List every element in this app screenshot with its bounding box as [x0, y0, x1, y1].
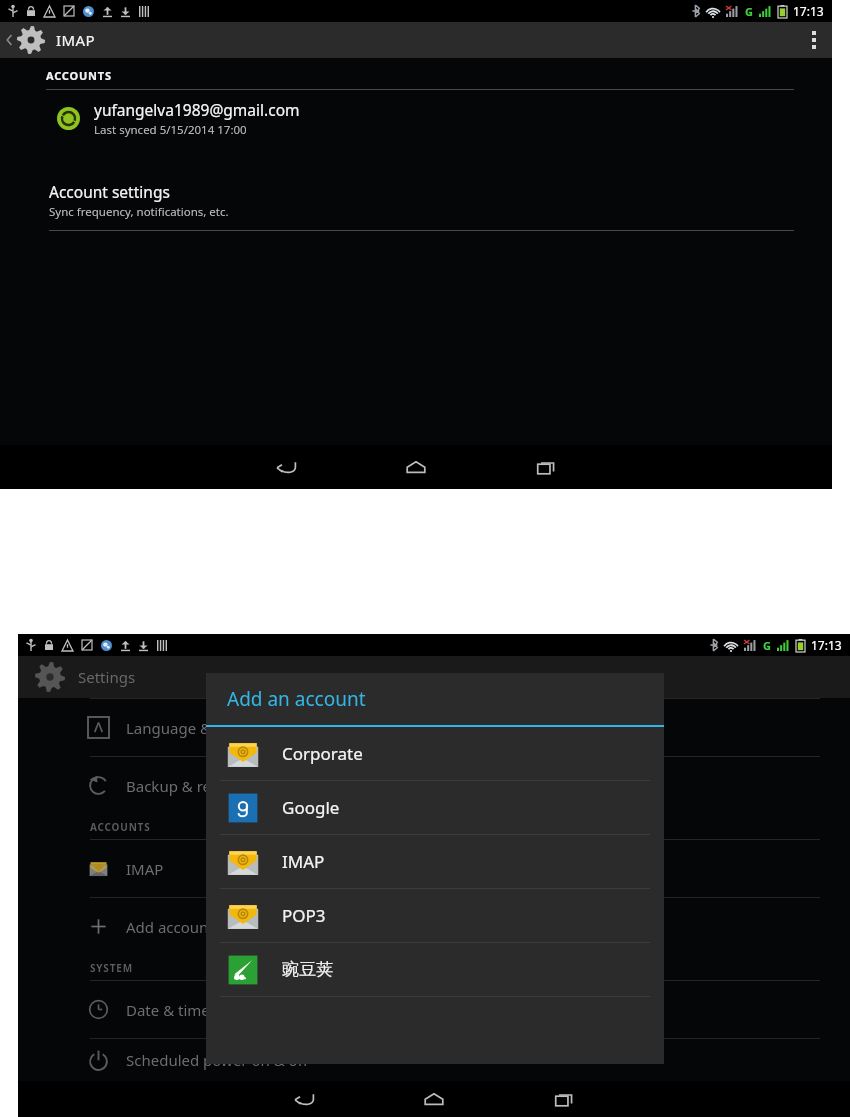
button[interactable]: IMAP	[18, 840, 850, 897]
staticText: Settings	[78, 667, 136, 687]
button[interactable]: Google	[206, 781, 664, 834]
staticText: ACCOUNTS	[90, 820, 151, 834]
staticText: IMAP	[282, 850, 325, 873]
button[interactable]: Recent apps	[511, 445, 581, 489]
staticText: Corporate	[282, 742, 363, 765]
button[interactable]: Recent apps	[529, 1081, 599, 1117]
staticText: IMAP	[56, 30, 95, 50]
staticText: 17:13	[811, 637, 842, 653]
staticText: 豌豆荚	[282, 959, 333, 980]
staticText: 17:13	[793, 3, 824, 19]
button[interactable]: Backup & reset	[18, 757, 850, 814]
button[interactable]: IMAP	[206, 835, 664, 888]
button[interactable]: Back	[251, 445, 321, 489]
button[interactable]: Corporate	[206, 727, 664, 780]
staticText: Language & input	[126, 718, 252, 738]
staticText: Account settings	[49, 181, 170, 202]
button[interactable]: Date & time	[18, 981, 850, 1038]
button[interactable]: POP3	[206, 889, 664, 942]
staticText: ACCOUNTS	[46, 68, 112, 83]
staticText: Sync frequency, notifications, etc.	[49, 204, 229, 220]
staticText: Date & time	[126, 1000, 210, 1020]
staticText: G	[763, 638, 771, 653]
staticText: IMAP	[126, 859, 164, 879]
button[interactable]: 豌豆荚	[206, 943, 664, 996]
button[interactable]: Add account	[18, 898, 850, 955]
staticText: yufangelva1989@gmail.com	[94, 99, 300, 120]
button[interactable]: Account settings	[0, 181, 832, 231]
button[interactable]: Home	[381, 445, 451, 489]
button[interactable]: IMAP	[0, 22, 107, 58]
staticText: Backup & reset	[126, 776, 233, 796]
button[interactable]: Scheduled power on & off	[18, 1039, 850, 1081]
staticText: POP3	[282, 904, 326, 927]
button[interactable]: Back	[269, 1081, 339, 1117]
button[interactable]: Home	[399, 1081, 469, 1117]
staticText: Add account	[126, 917, 214, 937]
button[interactable]: yufangelva1989@gmail.com	[0, 90, 832, 147]
button[interactable]: Language & input	[18, 699, 850, 756]
staticText: Add an account	[227, 686, 366, 712]
staticText: SYSTEM	[90, 961, 133, 975]
staticText: Scheduled power on & off	[126, 1050, 308, 1070]
staticText: Last synced 5/15/2014 17:00	[94, 122, 247, 138]
staticText: Google	[282, 796, 340, 819]
staticText: G	[745, 4, 753, 19]
button[interactable]: More options	[796, 22, 832, 58]
